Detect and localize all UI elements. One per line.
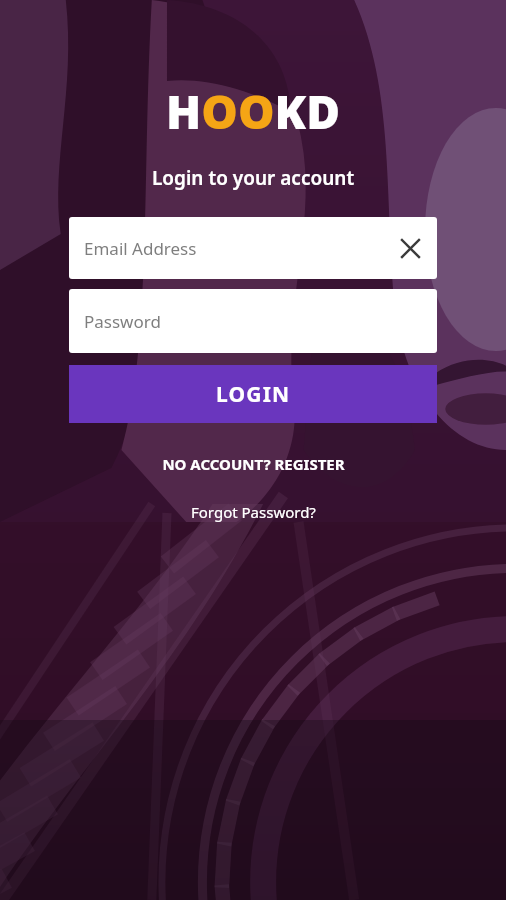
staticText: Email Address (84, 237, 197, 260)
staticText: LOGIN (216, 380, 291, 409)
staticText: Password (84, 310, 161, 333)
staticText: NO ACCOUNT? REGISTER (162, 454, 345, 474)
button[interactable]: LOGIN (69, 365, 437, 423)
button[interactable]: Forgot Password? (179, 499, 328, 525)
staticText: Login to your account (152, 165, 355, 191)
button[interactable]: Password (69, 289, 437, 353)
button[interactable]: Clear email (393, 231, 427, 265)
button[interactable]: Email Address (69, 217, 437, 279)
staticText: HOOKD (166, 80, 340, 143)
button[interactable]: NO ACCOUNT? REGISTER (150, 451, 357, 477)
staticText: Forgot Password? (191, 502, 316, 522)
